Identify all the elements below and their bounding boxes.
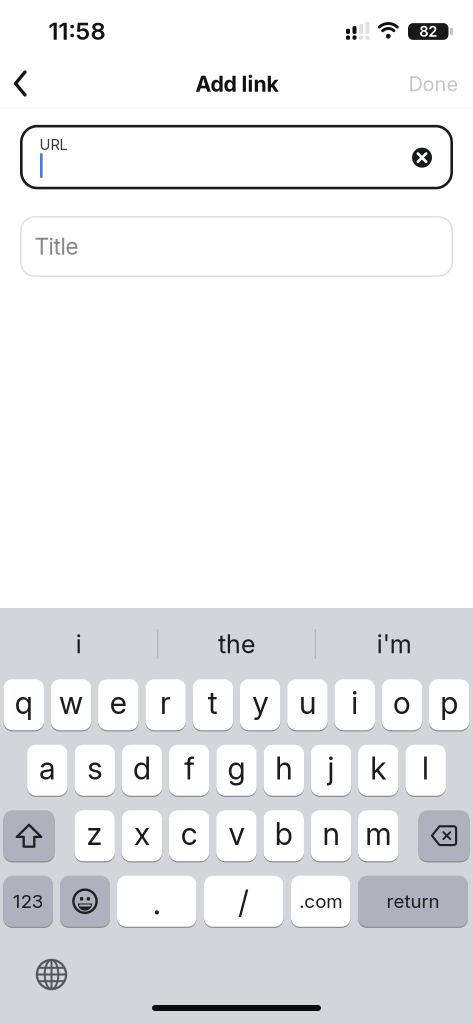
button[interactable]: Back — [1, 63, 41, 103]
staticText: .com — [299, 890, 342, 912]
button[interactable]: a — [27, 745, 68, 797]
staticText: r — [160, 685, 171, 721]
button[interactable]: y — [240, 679, 280, 732]
staticText: n — [322, 816, 339, 852]
staticText: y — [252, 685, 268, 721]
button[interactable]: return — [358, 876, 468, 928]
button[interactable]: f — [169, 745, 209, 797]
button[interactable]: n — [311, 810, 351, 863]
button[interactable]: d — [122, 745, 162, 797]
staticText: f — [184, 750, 194, 786]
staticText: URL — [39, 136, 67, 153]
staticText: e — [110, 685, 127, 721]
staticText: i — [76, 629, 82, 659]
staticText: l — [422, 750, 429, 786]
staticText: i — [351, 685, 358, 721]
staticText: Add link — [195, 71, 278, 97]
staticText: d — [133, 750, 151, 786]
staticText: Done — [408, 72, 458, 96]
staticText: v — [228, 816, 244, 852]
button[interactable]: o — [382, 679, 422, 732]
button[interactable]: Delete — [418, 810, 469, 863]
staticText: i'm — [377, 629, 412, 659]
button[interactable]: i — [9, 620, 149, 668]
button[interactable]: x — [122, 810, 162, 863]
staticText: p — [440, 685, 458, 721]
staticText: k — [370, 750, 386, 786]
textField[interactable]: URL — [20, 125, 453, 189]
staticText: w — [59, 685, 83, 721]
staticText: b — [275, 816, 293, 852]
staticText: 11:58 — [48, 17, 105, 45]
button[interactable]: g — [216, 745, 257, 797]
button[interactable]: r — [145, 679, 186, 732]
staticText: j — [328, 750, 335, 786]
staticText: return — [386, 890, 439, 912]
button[interactable]: b — [263, 810, 304, 863]
button[interactable]: k — [358, 745, 399, 797]
button[interactable]: e — [98, 679, 139, 732]
staticText: 82 — [419, 23, 437, 40]
button[interactable]: . — [117, 876, 196, 928]
staticText: . — [153, 883, 161, 922]
button[interactable]: the — [166, 620, 306, 668]
button[interactable]: .com — [291, 876, 350, 928]
staticText: h — [275, 750, 292, 786]
button[interactable]: t — [193, 679, 233, 732]
button[interactable]: c — [169, 810, 209, 863]
staticText: c — [181, 816, 198, 852]
staticText: q — [15, 685, 33, 721]
button[interactable]: u — [287, 679, 328, 732]
button[interactable]: s — [74, 745, 115, 797]
button[interactable]: Shift — [3, 810, 54, 863]
staticText: g — [227, 750, 245, 786]
button[interactable]: m — [358, 810, 398, 863]
button[interactable]: i — [334, 679, 375, 732]
staticText: u — [299, 685, 316, 721]
staticText: m — [365, 816, 391, 852]
button[interactable]: v — [216, 810, 257, 863]
button[interactable]: i'm — [324, 620, 464, 668]
staticText: Title — [34, 233, 78, 260]
button[interactable]: l — [405, 745, 446, 797]
button[interactable]: z — [74, 810, 115, 863]
staticText: s — [87, 750, 102, 786]
staticText: o — [393, 685, 411, 721]
button[interactable]: Done — [408, 72, 458, 96]
button[interactable]: / — [204, 876, 283, 928]
button[interactable]: Emoji — [60, 876, 110, 928]
button[interactable]: q — [3, 679, 44, 732]
button[interactable]: p — [429, 679, 469, 732]
staticText: x — [134, 816, 150, 852]
button[interactable]: Next keyboard — [35, 958, 67, 990]
textField[interactable]: Title — [20, 216, 453, 277]
staticText: / — [238, 885, 249, 921]
button[interactable]: j — [311, 745, 351, 797]
staticText: t — [208, 685, 218, 721]
staticText: 123 — [13, 890, 44, 912]
staticText: a — [39, 750, 56, 786]
button[interactable]: h — [263, 745, 304, 797]
staticText: z — [87, 816, 103, 852]
button[interactable]: 123 — [3, 876, 53, 928]
staticText: the — [218, 629, 255, 659]
button[interactable]: Clear text — [412, 148, 432, 168]
button[interactable]: w — [51, 679, 91, 732]
